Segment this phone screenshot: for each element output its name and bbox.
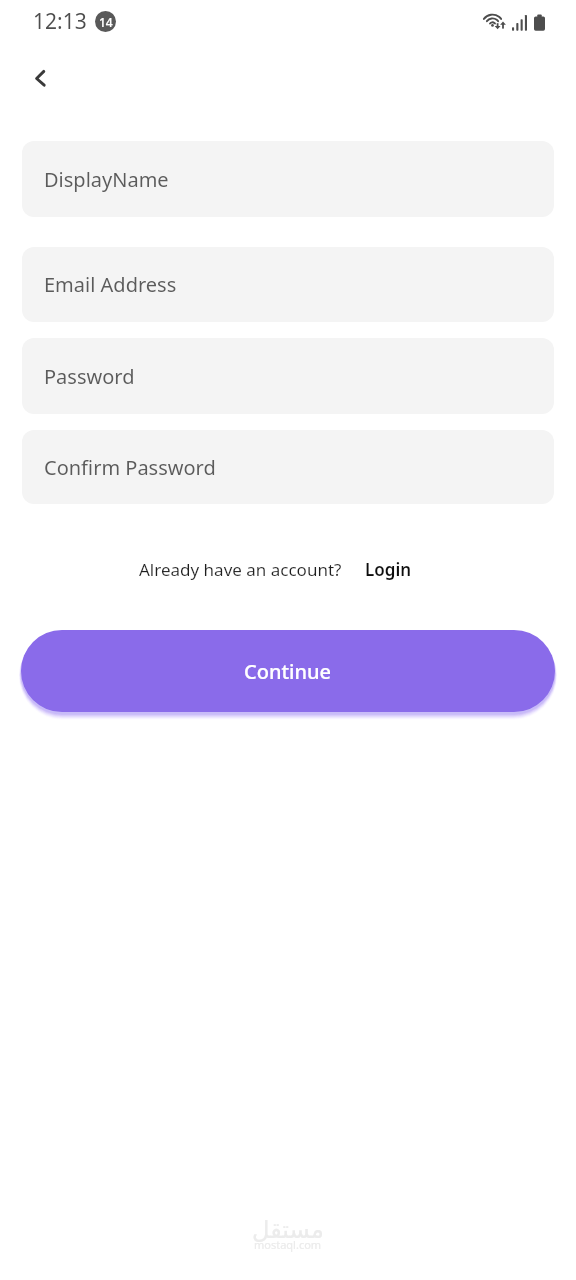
staticText: DisplayName xyxy=(44,166,169,193)
staticText: Confirm Password xyxy=(44,454,216,481)
staticText: 14 xyxy=(99,14,113,30)
staticText: Continue xyxy=(244,658,332,685)
button[interactable]: Confirm Password xyxy=(22,430,554,504)
staticText: mostaql.com xyxy=(254,1237,322,1252)
button[interactable]: Login xyxy=(365,558,412,581)
button[interactable]: DisplayName xyxy=(22,141,554,217)
staticText: Password xyxy=(44,363,135,390)
button[interactable]: Email Address xyxy=(22,247,554,322)
button[interactable]: Password xyxy=(22,338,554,414)
staticText: Already have an account? xyxy=(139,558,342,581)
button[interactable]: Continue xyxy=(21,630,555,712)
staticText: Email Address xyxy=(44,271,177,298)
staticText: Login xyxy=(365,558,412,581)
staticText: مستقل xyxy=(252,1216,324,1244)
button[interactable]: Back xyxy=(19,56,63,100)
staticText: 12:13 xyxy=(33,7,87,36)
